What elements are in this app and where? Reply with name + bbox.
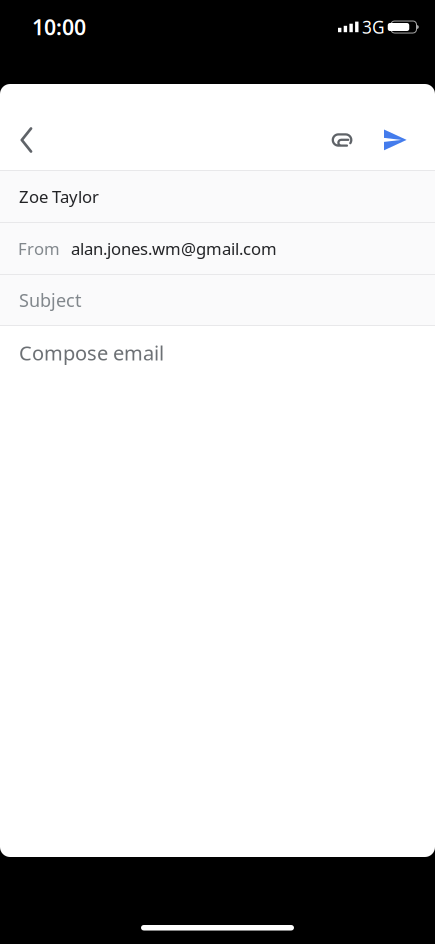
staticText: From xyxy=(18,237,60,260)
staticText: Zoe Taylor xyxy=(19,185,99,208)
button[interactable]: Zoe Taylor xyxy=(0,171,435,222)
staticText: Subject xyxy=(19,288,81,312)
staticText: 10:00 xyxy=(32,13,86,41)
button[interactable]: Send xyxy=(352,129,435,150)
button[interactable]: Attach file xyxy=(332,133,352,147)
button[interactable]: Compose email xyxy=(0,326,435,366)
button[interactable]: Back xyxy=(0,127,45,153)
button[interactable]: From xyxy=(0,223,435,274)
staticText: Compose email xyxy=(19,339,164,366)
button[interactable]: Subject xyxy=(0,275,435,325)
staticText: alan.jones.wm@gmail.com xyxy=(71,237,277,260)
staticText: 3G xyxy=(362,15,385,38)
